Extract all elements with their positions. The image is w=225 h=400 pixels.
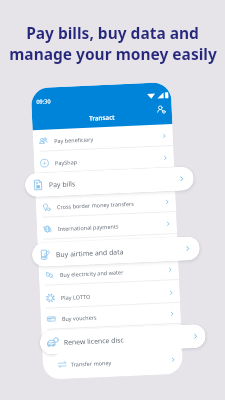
staticText: Buy electricity and water — [60, 268, 124, 278]
button[interactable]: Add beneficiary — [157, 105, 166, 115]
staticText: PayShap — [55, 158, 78, 166]
button[interactable]: Cross border money transfers — [35, 190, 176, 218]
staticText: 09:30 — [36, 97, 51, 106]
button[interactable] — [34, 168, 175, 196]
staticText: Play LOTTO — [61, 293, 91, 301]
button[interactable]: Pay bills — [24, 166, 194, 197]
staticText: Renew licence disc — [64, 335, 125, 347]
button[interactable] — [37, 236, 178, 264]
button[interactable]: International payments — [36, 212, 177, 240]
staticText: Transfer money — [71, 359, 112, 368]
button[interactable]: Transfer money — [51, 348, 182, 375]
button[interactable]: Play LOTTO — [39, 281, 180, 309]
staticText: manage your money easily — [9, 43, 217, 64]
staticText: Pay beneficiary — [54, 135, 94, 144]
staticText: Pay bills — [49, 179, 76, 189]
button[interactable]: Buy electricity and water — [38, 258, 179, 286]
staticText: Pay bills, buy data and — [26, 22, 199, 43]
button[interactable]: Pay beneficiary — [32, 124, 173, 152]
button[interactable]: Buy airtime and data — [31, 236, 200, 267]
button[interactable]: PayShap — [33, 146, 174, 174]
staticText: Cross border money transfers — [57, 200, 134, 210]
button[interactable] — [41, 325, 182, 353]
staticText: International payments — [58, 222, 119, 232]
staticText: Buy airtime and data — [56, 247, 124, 259]
staticText: Buy vouchers — [62, 313, 97, 322]
button[interactable]: Buy vouchers — [40, 302, 181, 330]
staticText: Transact — [89, 112, 115, 123]
button[interactable]: Renew licence disc — [39, 324, 206, 355]
